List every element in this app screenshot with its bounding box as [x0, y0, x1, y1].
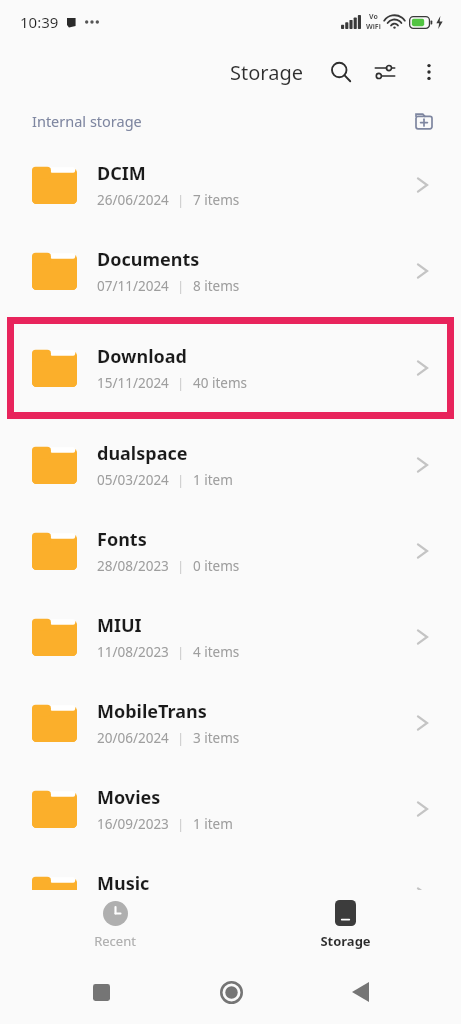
button[interactable]: DCIM — [0, 142, 461, 228]
staticText: Fonts — [97, 527, 147, 552]
staticText: 16/09/2023 — [97, 815, 169, 833]
staticText: 28/08/2023 — [97, 557, 169, 575]
staticText: Storage — [230, 59, 303, 86]
button[interactable]: More options — [407, 50, 451, 94]
button[interactable]: Recent — [0, 890, 230, 960]
button[interactable]: Recents — [73, 964, 129, 1020]
staticText: 7 items — [193, 191, 240, 209]
staticText: 0 items — [193, 557, 240, 575]
staticText: MobileTrans — [97, 699, 207, 724]
staticText: 1 item — [193, 815, 233, 833]
staticText: 03/11/2023 — [97, 901, 169, 919]
button[interactable]: Documents — [0, 228, 461, 314]
button[interactable]: Download — [7, 317, 454, 419]
staticText: 40 items — [193, 374, 248, 392]
button[interactable]: Home — [203, 964, 259, 1020]
staticText: Download — [97, 344, 187, 369]
button[interactable]: MIUI — [0, 594, 461, 680]
staticText: | — [177, 277, 185, 295]
button[interactable]: New folder — [407, 104, 441, 138]
staticText: 15/11/2024 — [97, 374, 169, 392]
staticText: MIUI — [97, 613, 142, 638]
staticText: | — [177, 557, 185, 575]
button[interactable]: Search — [319, 50, 363, 94]
staticText: | — [177, 643, 185, 661]
staticText: | — [177, 729, 185, 747]
staticText: | — [177, 374, 185, 392]
staticText: 4 items — [193, 643, 240, 661]
staticText: Documents — [97, 247, 200, 272]
staticText: 8 items — [193, 277, 240, 295]
staticText: 3 items — [193, 729, 240, 747]
button[interactable]: Back — [332, 964, 388, 1020]
button[interactable]: dualspace — [0, 422, 461, 508]
button[interactable]: Fonts — [0, 508, 461, 594]
staticText: 05/03/2024 — [97, 471, 169, 489]
staticText: 1 item — [193, 471, 233, 489]
staticText: 20/06/2024 — [97, 729, 169, 747]
staticText: Vo — [369, 12, 378, 22]
staticText: 26/06/2024 — [97, 191, 169, 209]
staticText: 07/11/2024 — [97, 277, 169, 295]
staticText: Recent — [94, 932, 136, 950]
staticText: Internal storage — [32, 111, 142, 131]
staticText: Movies — [97, 785, 161, 810]
button[interactable]: MobileTrans — [0, 680, 461, 766]
staticText: | — [177, 815, 185, 833]
staticText: dualspace — [97, 441, 188, 466]
staticText: WiFi — [366, 22, 381, 32]
staticText: Music — [97, 871, 150, 896]
button[interactable]: Storage — [230, 890, 461, 960]
staticText: DCIM — [97, 161, 146, 186]
staticText: 10:39 — [20, 12, 59, 32]
staticText: | — [177, 471, 185, 489]
button[interactable]: Sort — [363, 50, 407, 94]
staticText: | — [177, 191, 185, 209]
staticText: 11/08/2023 — [97, 643, 169, 661]
button[interactable]: Music — [0, 852, 461, 938]
button[interactable]: Movies — [0, 766, 461, 852]
staticText: Storage — [320, 932, 371, 950]
